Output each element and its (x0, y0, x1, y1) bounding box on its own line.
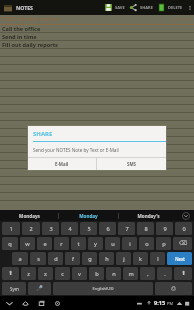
button[interactable]: 1 (2, 222, 20, 235)
button[interactable]: l (150, 252, 165, 265)
staticText: k (139, 255, 142, 263)
button[interactable]: Monday (59, 210, 118, 221)
button[interactable]: p (156, 237, 171, 250)
button[interactable]: x (38, 267, 53, 280)
button[interactable]: E-Mail (28, 158, 96, 170)
button[interactable]: d (48, 252, 63, 265)
button[interactable]: 8 (137, 222, 154, 235)
button[interactable]: Save (102, 0, 127, 15)
button[interactable]: Space (53, 282, 153, 295)
staticText: DELETE (168, 5, 183, 10)
button[interactable]: n (106, 267, 121, 280)
button[interactable]: 0 (175, 222, 192, 235)
staticText: i (129, 240, 131, 248)
staticText: ⬆ (8, 270, 13, 277)
staticText: SHARE (140, 5, 153, 10)
staticText: e (43, 240, 47, 248)
button[interactable]: Expand suggestions (178, 210, 194, 221)
staticText: l (157, 255, 159, 263)
staticText: E-Mail (55, 161, 69, 167)
staticText: SHARE (33, 130, 53, 138)
button[interactable]: SMS (97, 158, 166, 170)
button[interactable]: r (54, 237, 69, 250)
button[interactable]: Back (4, 298, 14, 308)
button[interactable]: More options (185, 0, 194, 15)
button[interactable]: Monday's (119, 210, 178, 221)
button[interactable]: k (133, 252, 148, 265)
staticText: 9:15 (154, 299, 166, 307)
button[interactable]: b (89, 267, 104, 280)
button[interactable]: 5 (80, 222, 97, 235)
staticText: 0 (182, 225, 186, 233)
button[interactable]: Voice input (28, 282, 51, 295)
staticText: Next (175, 256, 185, 262)
staticText: y (94, 240, 97, 248)
staticText: m (128, 270, 134, 278)
button[interactable]: t (71, 237, 86, 250)
button[interactable]: 6 (99, 222, 116, 235)
button[interactable]: 7 (118, 222, 135, 235)
button[interactable]: Backspace (173, 237, 192, 250)
button[interactable]: m (123, 267, 138, 280)
button[interactable]: , (140, 267, 155, 280)
button[interactable]: z (21, 267, 36, 280)
staticText: s (37, 255, 40, 263)
button[interactable]: v (72, 267, 87, 280)
staticText: Monday (79, 213, 98, 219)
button[interactable]: i (122, 237, 137, 250)
button[interactable]: Mondays (0, 210, 58, 221)
staticText: Monday's (137, 213, 160, 219)
staticText: r (60, 240, 63, 248)
staticText: ⎙ (171, 286, 176, 292)
staticText: h (105, 255, 109, 263)
button[interactable]: Home (20, 298, 30, 308)
button[interactable]: g (82, 252, 97, 265)
button[interactable]: Shift (174, 267, 192, 280)
staticText: NOTES (16, 4, 33, 11)
button[interactable]: Sym (2, 282, 26, 295)
staticText: p (162, 240, 166, 248)
button[interactable]: w (20, 237, 35, 250)
button[interactable]: o (139, 237, 154, 250)
button[interactable]: Next (167, 252, 192, 265)
button[interactable]: 9 (156, 222, 173, 235)
button[interactable]: Screenshot (52, 298, 62, 308)
staticText: z (27, 270, 30, 278)
staticText: q (8, 240, 12, 248)
staticText: j (123, 255, 125, 263)
staticText: SMS (127, 161, 136, 167)
staticText: o (145, 240, 149, 248)
button[interactable]: Share (127, 0, 155, 15)
staticText: a (18, 255, 22, 263)
staticText: PM (167, 301, 174, 306)
button[interactable]: s (30, 252, 46, 265)
button[interactable]: . (157, 267, 172, 280)
staticText: SAVE (115, 5, 125, 10)
button[interactable]: q (2, 237, 18, 250)
button[interactable]: 4 (61, 222, 78, 235)
button[interactable]: y (88, 237, 103, 250)
staticText: . (164, 270, 166, 278)
staticText: Fill out daily reports (2, 41, 58, 49)
button[interactable]: Clipboard (155, 282, 192, 295)
button[interactable]: Shift (2, 267, 19, 280)
button[interactable]: 3 (42, 222, 59, 235)
button[interactable]: j (116, 252, 131, 265)
staticText: v (78, 270, 81, 278)
staticText: x (44, 270, 47, 278)
button[interactable]: Delete (155, 0, 185, 15)
button[interactable]: f (65, 252, 80, 265)
button[interactable]: c (55, 267, 70, 280)
staticText: 9 (163, 225, 167, 233)
staticText: TITLE: Monday note list (2, 16, 60, 23)
staticText: ⬆ (181, 270, 186, 277)
button[interactable]: Recent apps (36, 298, 46, 308)
button[interactable]: h (99, 252, 114, 265)
button[interactable]: a (12, 252, 28, 265)
button[interactable]: 2 (22, 222, 40, 235)
staticText: 2 (29, 225, 33, 233)
button[interactable]: u (105, 237, 120, 250)
staticText: w (25, 240, 30, 248)
staticText: n (112, 270, 116, 278)
button[interactable]: e (37, 237, 52, 250)
